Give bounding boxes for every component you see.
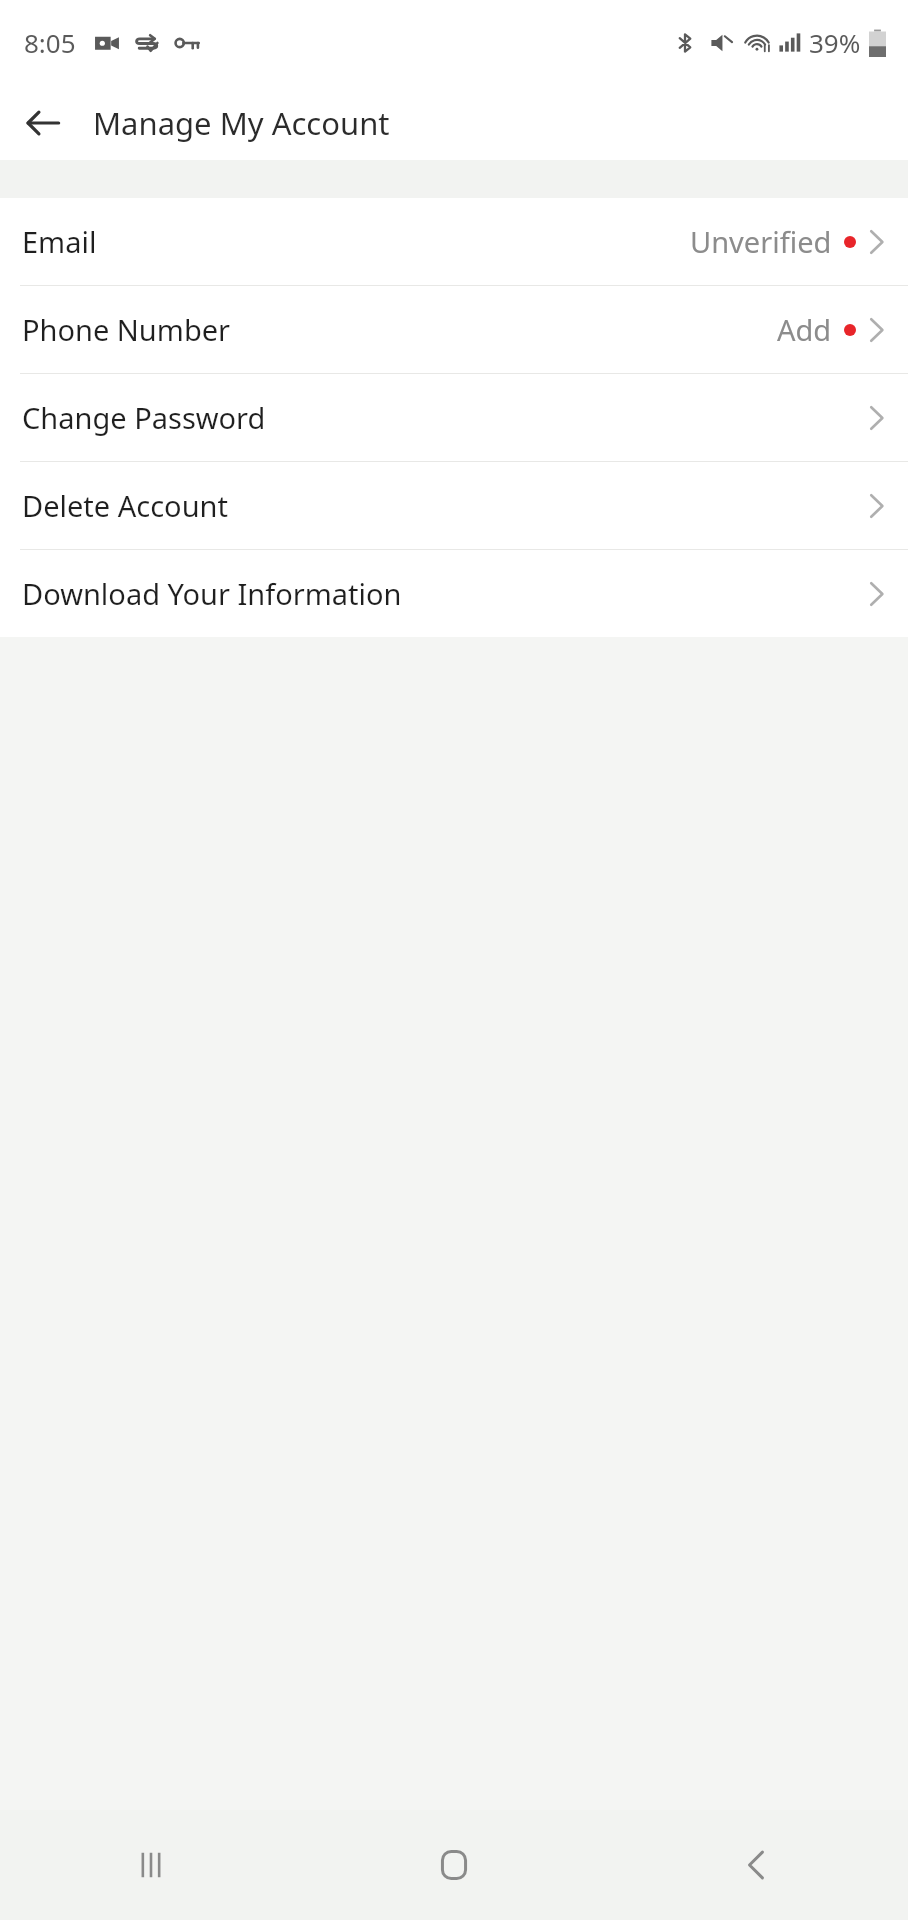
button[interactable]: Phone Number <box>0 286 908 373</box>
staticText: Manage My Account <box>93 102 390 144</box>
button[interactable]: Back <box>16 96 70 150</box>
staticText: 39% <box>809 25 861 60</box>
button[interactable]: Recent apps <box>0 1810 302 1920</box>
button[interactable]: Change Password <box>0 374 908 461</box>
staticText: Download Your Information <box>22 574 402 613</box>
staticText: Email <box>22 222 97 261</box>
staticText: 8:05 <box>24 25 76 60</box>
staticText: Unverified <box>690 222 832 261</box>
button[interactable]: Delete Account <box>0 462 908 549</box>
button[interactable]: Download Your Information <box>0 550 908 637</box>
staticText: Phone Number <box>22 310 231 349</box>
staticText: Change Password <box>22 398 266 437</box>
staticText: Add <box>777 310 832 349</box>
button[interactable]: Back <box>605 1810 908 1920</box>
button[interactable]: Email <box>0 198 908 285</box>
button[interactable]: Home <box>302 1810 605 1920</box>
staticText: Delete Account <box>22 486 228 525</box>
